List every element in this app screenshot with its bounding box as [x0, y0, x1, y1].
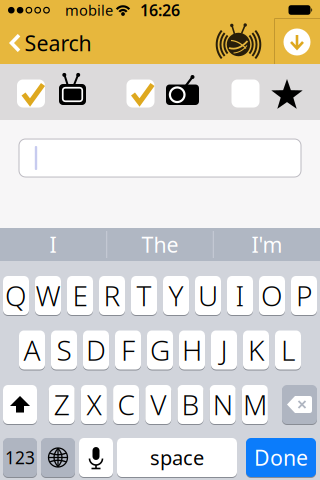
button[interactable]: V	[145, 384, 171, 424]
staticText: G	[150, 331, 170, 369]
staticText: F	[121, 331, 135, 369]
button[interactable]: P	[291, 275, 317, 315]
staticText: J	[220, 331, 227, 369]
staticText: I	[235, 277, 244, 314]
staticText: Done	[254, 443, 308, 472]
button[interactable]: Favourites filter off	[231, 79, 259, 107]
button[interactable]: S	[51, 330, 77, 370]
button[interactable]: Q	[3, 275, 29, 315]
button[interactable]: G	[147, 330, 173, 370]
staticText: I'm	[251, 230, 282, 259]
staticText: I	[49, 230, 56, 259]
button[interactable]: K	[243, 330, 269, 370]
staticText: The	[141, 230, 178, 259]
staticText: V	[150, 386, 166, 423]
staticText: H	[182, 331, 202, 369]
staticText: W	[35, 277, 60, 314]
staticText: B	[181, 386, 199, 423]
button[interactable]: 123	[3, 437, 37, 477]
button[interactable]: Z	[49, 384, 75, 424]
staticText: C	[118, 386, 135, 423]
button[interactable]: I	[227, 275, 253, 315]
staticText: K	[248, 331, 264, 369]
staticText: P	[296, 277, 312, 314]
button[interactable]: D	[83, 330, 109, 370]
staticText: Search	[24, 29, 91, 57]
button[interactable]: TV filter on	[17, 79, 45, 107]
button[interactable]: X	[81, 384, 107, 424]
staticText: 123	[5, 446, 35, 469]
staticText: space	[150, 444, 204, 471]
staticText: M	[243, 386, 267, 423]
button[interactable]: Next keyboard	[41, 437, 75, 477]
button[interactable]: T	[131, 275, 157, 315]
staticText: R	[103, 277, 120, 314]
staticText: mobile	[65, 0, 113, 20]
button[interactable]: E	[67, 275, 93, 315]
button[interactable]: R	[99, 275, 125, 315]
button[interactable]: H	[179, 330, 205, 370]
staticText: X	[86, 386, 101, 423]
button[interactable]: U	[195, 275, 221, 315]
button[interactable]: L	[275, 330, 301, 370]
staticText: 16:26	[140, 0, 180, 21]
staticText: N	[213, 386, 233, 423]
staticText: Z	[54, 386, 70, 423]
button[interactable]: B	[177, 384, 203, 424]
button[interactable]: Radio filter on	[126, 79, 154, 107]
button[interactable]: The	[110, 228, 210, 261]
staticText: O	[261, 277, 283, 314]
staticText: S	[56, 331, 71, 369]
button[interactable]: Shift	[3, 384, 37, 424]
button[interactable]: M	[242, 384, 268, 424]
button[interactable]: Y	[163, 275, 189, 315]
staticText: Y	[168, 277, 183, 314]
button[interactable]: space	[117, 437, 237, 477]
button[interactable]: Download	[275, 20, 319, 64]
staticText: D	[86, 331, 106, 369]
staticText: E	[72, 277, 87, 314]
staticText: Q	[5, 277, 27, 314]
staticText: U	[198, 277, 218, 314]
button[interactable]: N	[210, 384, 236, 424]
button[interactable]: Dictate	[79, 437, 113, 477]
button[interactable]: C	[113, 384, 139, 424]
button[interactable]: F	[115, 330, 141, 370]
button[interactable]: I	[3, 228, 103, 261]
button[interactable]: Delete	[282, 384, 317, 424]
staticText: A	[23, 331, 40, 369]
staticText: L	[281, 331, 295, 369]
button[interactable]: Done	[246, 437, 316, 477]
button[interactable]: Back to Search	[9, 21, 117, 65]
button[interactable]: A	[19, 330, 45, 370]
button[interactable]: O	[259, 275, 285, 315]
button[interactable]: W	[35, 275, 61, 315]
button[interactable]: J	[211, 330, 237, 370]
staticText: T	[136, 277, 151, 314]
button[interactable]: I'm	[217, 228, 317, 261]
